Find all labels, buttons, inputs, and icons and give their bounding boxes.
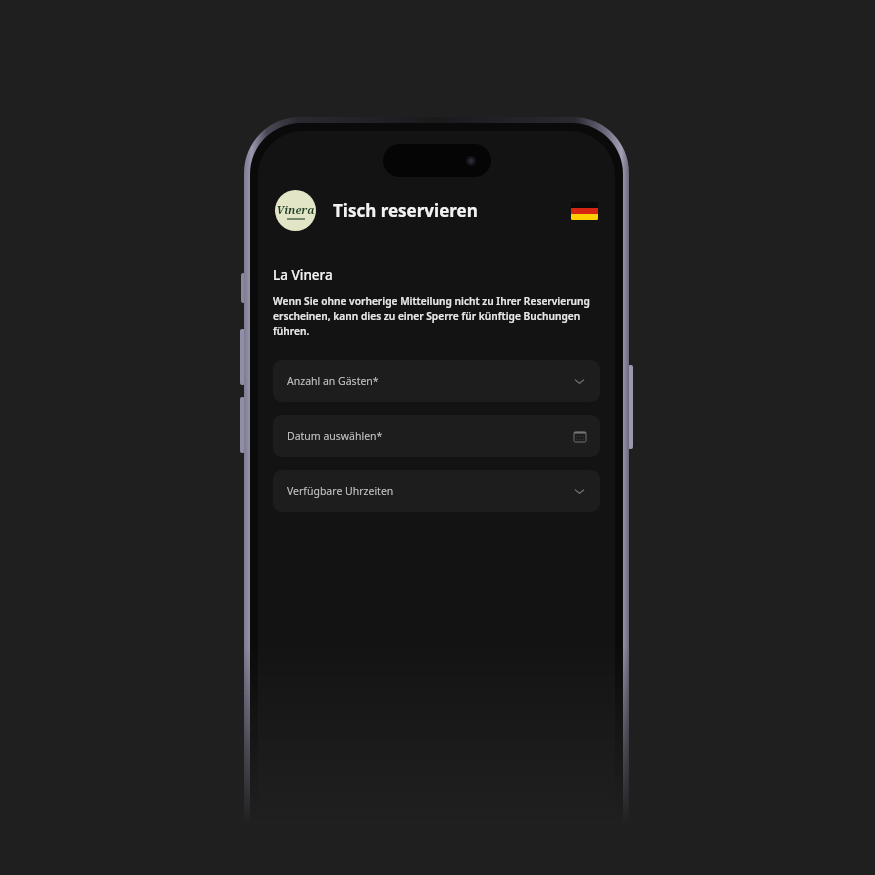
staticText: Tisch reservieren [333,199,478,222]
other: Auswahl öffnen [573,375,586,388]
staticText: La Vinera [273,266,333,284]
staticText: Datum auswählen* [287,429,383,443]
button[interactable]: Verfügbare Uhrzeiten [273,470,600,512]
other: Auswahl öffnen [573,485,586,498]
button[interactable]: Datum auswählen* [273,415,600,457]
staticText: Verfügbare Uhrzeiten [287,484,394,498]
button[interactable]: La Vinera Logo [275,190,316,231]
other: Datum auswählen [574,430,586,442]
button[interactable]: Sprache: Deutsch [571,202,598,220]
staticText: Wenn Sie ohne vorherige Mitteilung nicht… [273,294,600,338]
staticText: Anzahl an Gästen* [287,374,379,388]
staticText: Vinera [276,202,315,217]
button[interactable]: Anzahl an Gästen* [273,360,600,402]
